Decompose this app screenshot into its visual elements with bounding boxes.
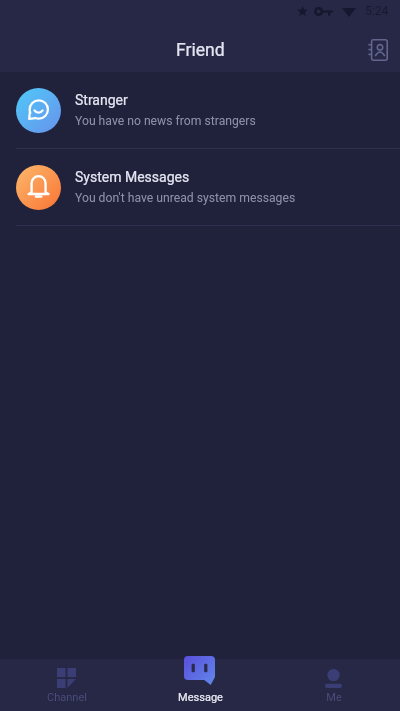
staticText: You have no news from strangers (75, 114, 256, 128)
staticText: Friend (176, 40, 225, 61)
staticText: You don't have unread system messages (75, 191, 296, 205)
staticText: Channel (47, 691, 87, 704)
button[interactable]: Me (267, 659, 400, 711)
button[interactable]: Channel (0, 659, 134, 711)
button[interactable]: Stranger (0, 72, 400, 149)
staticText: System Messages (75, 169, 190, 185)
staticText: Me (326, 691, 342, 704)
button[interactable]: Contacts (360, 30, 396, 66)
button[interactable]: Message (134, 659, 267, 711)
staticText: Message (178, 691, 223, 704)
staticText: 5:24 (365, 4, 389, 18)
button[interactable]: System Messages (0, 149, 400, 226)
staticText: Stranger (75, 92, 128, 108)
